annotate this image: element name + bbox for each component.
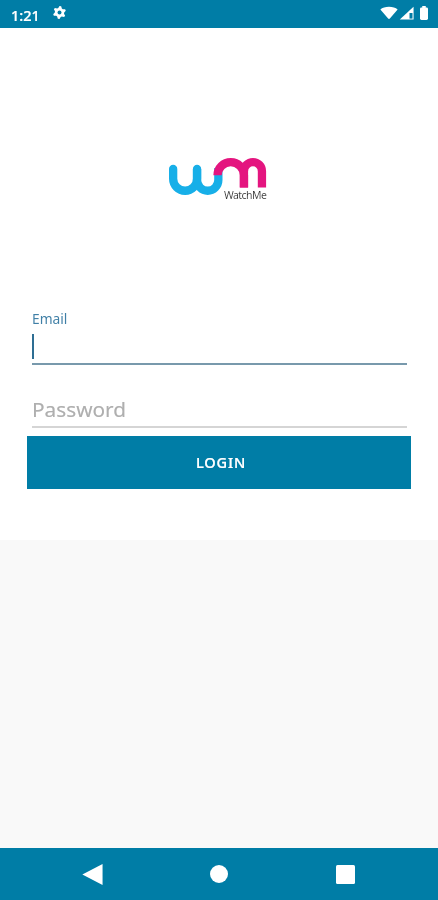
staticText: WatchMe (224, 188, 267, 202)
staticText: Password (32, 395, 127, 423)
button[interactable]: Back (75, 848, 111, 900)
button[interactable]: LOGIN (27, 436, 411, 489)
staticText: LOGIN (196, 452, 247, 472)
staticText: Email (32, 309, 68, 328)
button[interactable]: Recent apps (327, 848, 363, 900)
button[interactable]: Home (201, 848, 237, 900)
staticText: 1:21 (11, 5, 40, 25)
